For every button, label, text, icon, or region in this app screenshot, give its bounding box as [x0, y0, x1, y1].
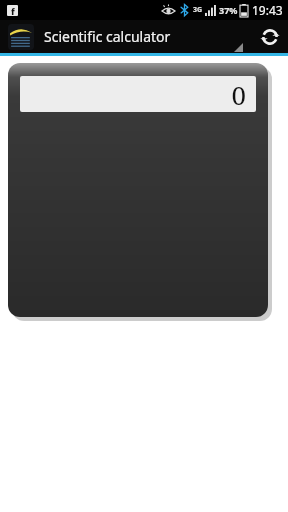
- staticText: 37%: [219, 4, 238, 16]
- staticText: 3G: [193, 5, 203, 15]
- staticText: Scientific calculator: [44, 27, 171, 46]
- staticText: 19:43: [252, 2, 283, 18]
- staticText: f: [11, 5, 15, 16]
- staticText: 0: [231, 77, 246, 112]
- button[interactable]: Refresh: [252, 20, 288, 53]
